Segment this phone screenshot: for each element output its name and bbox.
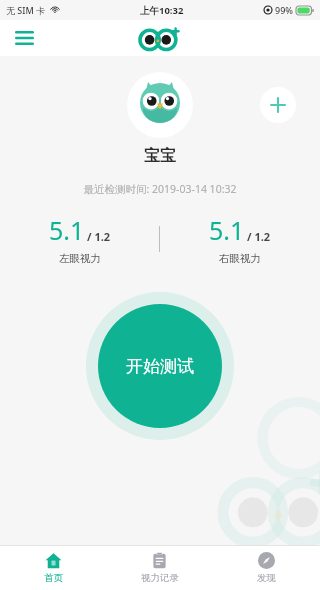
staticText: 发现 [257, 572, 276, 584]
button[interactable]: 5.1 [0, 213, 159, 265]
staticText: 视力记录 [141, 572, 179, 584]
staticText: 无 SIM 卡 [6, 4, 46, 16]
staticText: 最近检测时间: 2019-03-14 10:32 [0, 182, 320, 196]
staticText: 99% [275, 4, 293, 16]
staticText: 宝宝 [0, 146, 320, 166]
button[interactable]: Menu [8, 22, 40, 54]
button[interactable]: 首页 [0, 546, 106, 590]
staticText: / 1.2 [87, 229, 111, 244]
staticText: 5.1 [209, 213, 245, 247]
staticText: 左眼视力 [59, 252, 101, 265]
button[interactable]: 发现 [213, 546, 320, 590]
button[interactable]: Add child [260, 87, 296, 123]
staticText: / 1.2 [247, 229, 271, 244]
staticText: 上午10:32 [140, 4, 184, 17]
button[interactable]: 5.1 [160, 213, 320, 265]
button[interactable]: 开始测试 [86, 292, 234, 440]
button[interactable]: Profile avatar [127, 72, 193, 138]
staticText: 开始测试 [126, 356, 194, 377]
staticText: 5.1 [49, 213, 85, 247]
staticText: 首页 [44, 572, 63, 584]
staticText: 右眼视力 [219, 252, 261, 265]
button[interactable]: 视力记录 [106, 546, 213, 590]
